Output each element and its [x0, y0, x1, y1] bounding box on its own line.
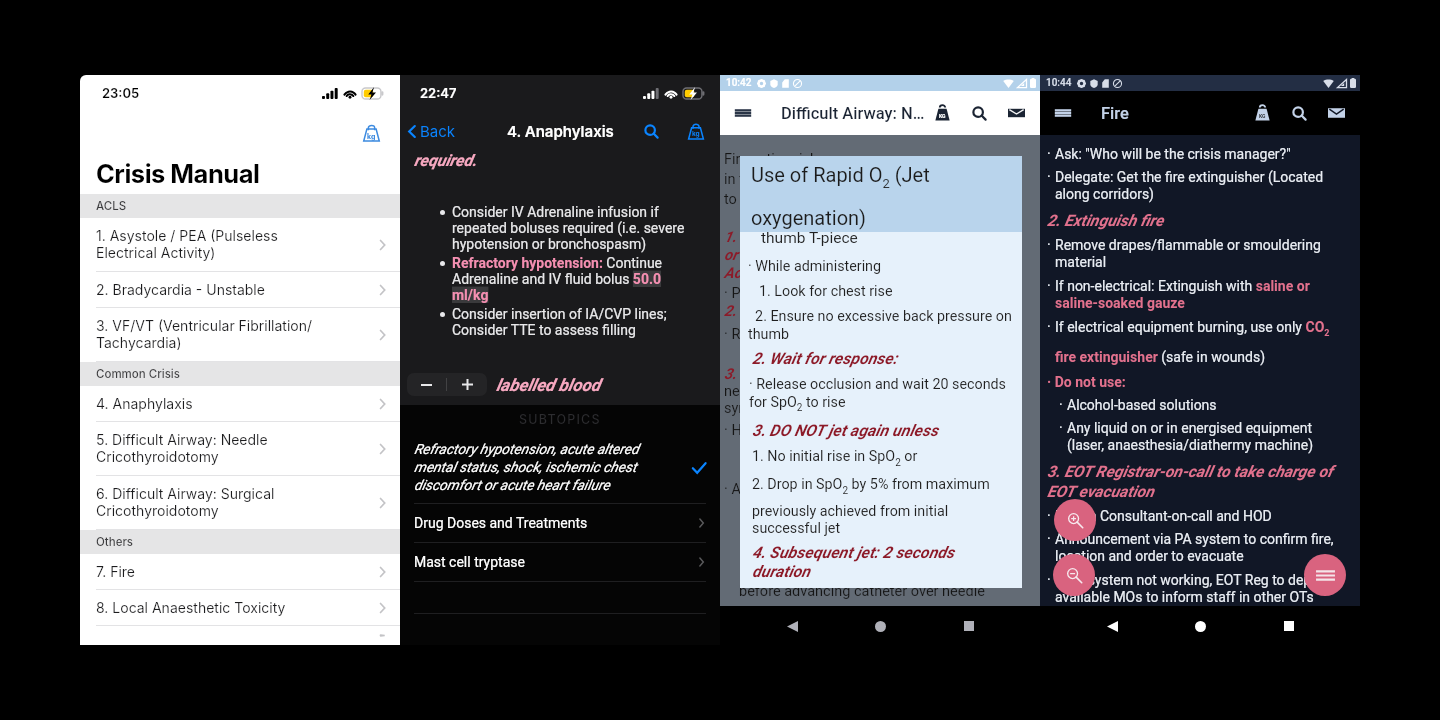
button[interactable]: Decrease text size — [407, 373, 446, 396]
button[interactable]: Weight — [927, 98, 957, 128]
button[interactable]: Zoom out — [1053, 554, 1095, 596]
staticText: KG — [1259, 113, 1266, 119]
staticText: 3. EOT Registrar-on-call to take charge … — [1047, 462, 1343, 501]
staticText: Fire — [1101, 104, 1129, 123]
staticText: in theatre — [724, 171, 785, 188]
staticText: before advancing catheter over needle — [739, 583, 985, 600]
staticText: · — [1047, 237, 1051, 253]
button[interactable]: 1. Asystole / PEA (Pulseless Electrical … — [80, 218, 400, 272]
button[interactable]: 4. Anaphylaxis — [80, 386, 400, 422]
staticText: 2. Extinguish fire — [1047, 211, 1343, 230]
button[interactable]: Mast cell tryptase — [400, 543, 720, 582]
staticText: · — [1047, 319, 1051, 335]
staticText: · Release occlusion and wait 20 seconds … — [749, 376, 1020, 414]
staticText: 2. Drop in SpO2 by 5% from maximum previ… — [752, 476, 1020, 536]
staticText: · Do not use: — [1047, 374, 1126, 390]
button[interactable]: Home — [863, 609, 897, 643]
staticText: 1. Asystole / PEA (Pulseless Electrical … — [96, 227, 377, 262]
staticText: · — [1047, 169, 1051, 185]
staticText: · — [1047, 531, 1051, 547]
button[interactable]: Mail — [1001, 98, 1031, 128]
staticText: · — [1047, 278, 1051, 294]
button[interactable]: Drug Doses and Treatments — [400, 504, 720, 543]
button[interactable]: Mail — [1321, 98, 1351, 128]
staticText: · Advance — [724, 481, 788, 498]
staticText: · — [1047, 572, 1051, 588]
staticText: Difficult Airway: N… — [781, 104, 925, 123]
staticText: labelled blood — [496, 375, 601, 395]
button[interactable]: Menu — [1304, 554, 1346, 596]
staticText: Alcohol-based solutions — [1067, 397, 1351, 413]
staticText: Mast cell tryptase — [414, 554, 697, 570]
button[interactable]: Weight — [1247, 98, 1277, 128]
button[interactable]: Search — [639, 119, 663, 143]
staticText: · Press — [724, 285, 768, 302]
button[interactable]: 7. Fire — [80, 554, 400, 590]
button[interactable]: 2. Bradycardia - Unstable — [80, 272, 400, 308]
staticText: 4. Anaphylaxis — [507, 122, 614, 140]
staticText: 1. Look for chest rise — [759, 283, 1020, 300]
staticText: Announcement via PA system to confirm fi… — [1055, 531, 1351, 565]
staticText: Consider insertion of IA/CVP lines; Cons… — [452, 306, 699, 338]
staticText: 22:47 — [420, 85, 457, 101]
button[interactable]: Menu — [730, 100, 756, 126]
staticText: required. — [414, 151, 477, 170]
staticText: 10:44 — [1046, 77, 1072, 89]
staticText: 2. Wait for response: — [752, 349, 1014, 368]
staticText: Drug Doses and Treatments — [414, 515, 697, 531]
staticText: Use of Rapid O2 (Jet oxygenation) — [751, 163, 1010, 230]
staticText: 2. Ensure no excessive back pressure on … — [748, 308, 1020, 342]
button[interactable]: Back — [407, 122, 456, 140]
staticText: 23:05 — [102, 85, 140, 101]
staticText: Common Crisis — [96, 367, 180, 381]
button[interactable]: Back — [1095, 609, 1129, 643]
staticText: 8. Local Anaesthetic Toxicity — [96, 599, 377, 616]
button[interactable]: Weight — [684, 119, 708, 143]
staticText: · — [1059, 397, 1063, 413]
button[interactable]: 8. Local Anaesthetic Toxicity — [80, 590, 400, 626]
button[interactable]: Search — [1284, 98, 1314, 128]
staticText: If PA system not working, EOT Reg to dep… — [1055, 572, 1351, 606]
staticText: thumb T-piece — [761, 229, 858, 247]
button[interactable]: 5. Difficult Airway: Needle Cricothyroid… — [80, 422, 400, 476]
button[interactable]: Back — [775, 609, 809, 643]
staticText: 4. Anaphylaxis — [96, 395, 377, 412]
staticText: Consider IV Adrenaline infusion if repea… — [452, 204, 699, 252]
staticText: syringe — [724, 400, 771, 417]
staticText: Delegate: Get the fire extinguisher (Loc… — [1055, 169, 1351, 203]
button[interactable]: Weight — [356, 118, 386, 148]
staticText: · — [1047, 146, 1051, 162]
button[interactable]: 6. Difficult Airway: Surgical Cricothyro… — [80, 476, 400, 530]
button[interactable]: Recents — [952, 609, 986, 643]
button[interactable]: Home — [1183, 609, 1217, 643]
staticText: 2. Extinguish — [724, 302, 809, 320]
button[interactable]: 3. VF/VT (Ventricular Fibrillation/ Tach… — [80, 308, 400, 362]
staticText: Remove drapes/flammable or smouldering m… — [1055, 237, 1351, 271]
button[interactable]: Zoom in — [1054, 499, 1096, 541]
button[interactable]: Increase text size — [447, 373, 487, 396]
staticText: 7. Fire — [96, 563, 377, 580]
button[interactable]: Refractory hypotension, acute altered me… — [400, 432, 720, 503]
button[interactable]: Recents — [1272, 609, 1306, 643]
staticText: SUBTOPICS — [519, 412, 601, 427]
staticText: 3. Evacuate — [724, 365, 800, 383]
staticText: KG — [939, 113, 946, 119]
staticText: · — [1047, 508, 1051, 524]
button[interactable]: Menu — [1050, 100, 1076, 126]
staticText: If non-electrical: Extinguish with salin… — [1055, 278, 1351, 312]
staticText: to be used — [724, 191, 792, 208]
button[interactable]: Search — [964, 98, 994, 128]
staticText: 1. Call for help — [724, 228, 820, 246]
staticText: 2. Bradycardia - Unstable — [96, 281, 377, 298]
staticText: Fire extinguisher — [724, 151, 831, 168]
staticText: kg — [367, 132, 376, 140]
staticText: Ask: "Who will be the crisis manager?" — [1055, 146, 1351, 162]
staticText: 10:42 — [726, 77, 752, 89]
staticText: Others — [96, 535, 134, 549]
staticText: 3. VF/VT (Ventricular Fibrillation/ Tach… — [96, 317, 377, 352]
staticText: Any liquid on or in energised equipment … — [1067, 420, 1347, 454]
staticText: 6. Difficult Airway: Surgical Cricothyro… — [96, 485, 377, 520]
staticText: ACLS — [96, 199, 127, 213]
